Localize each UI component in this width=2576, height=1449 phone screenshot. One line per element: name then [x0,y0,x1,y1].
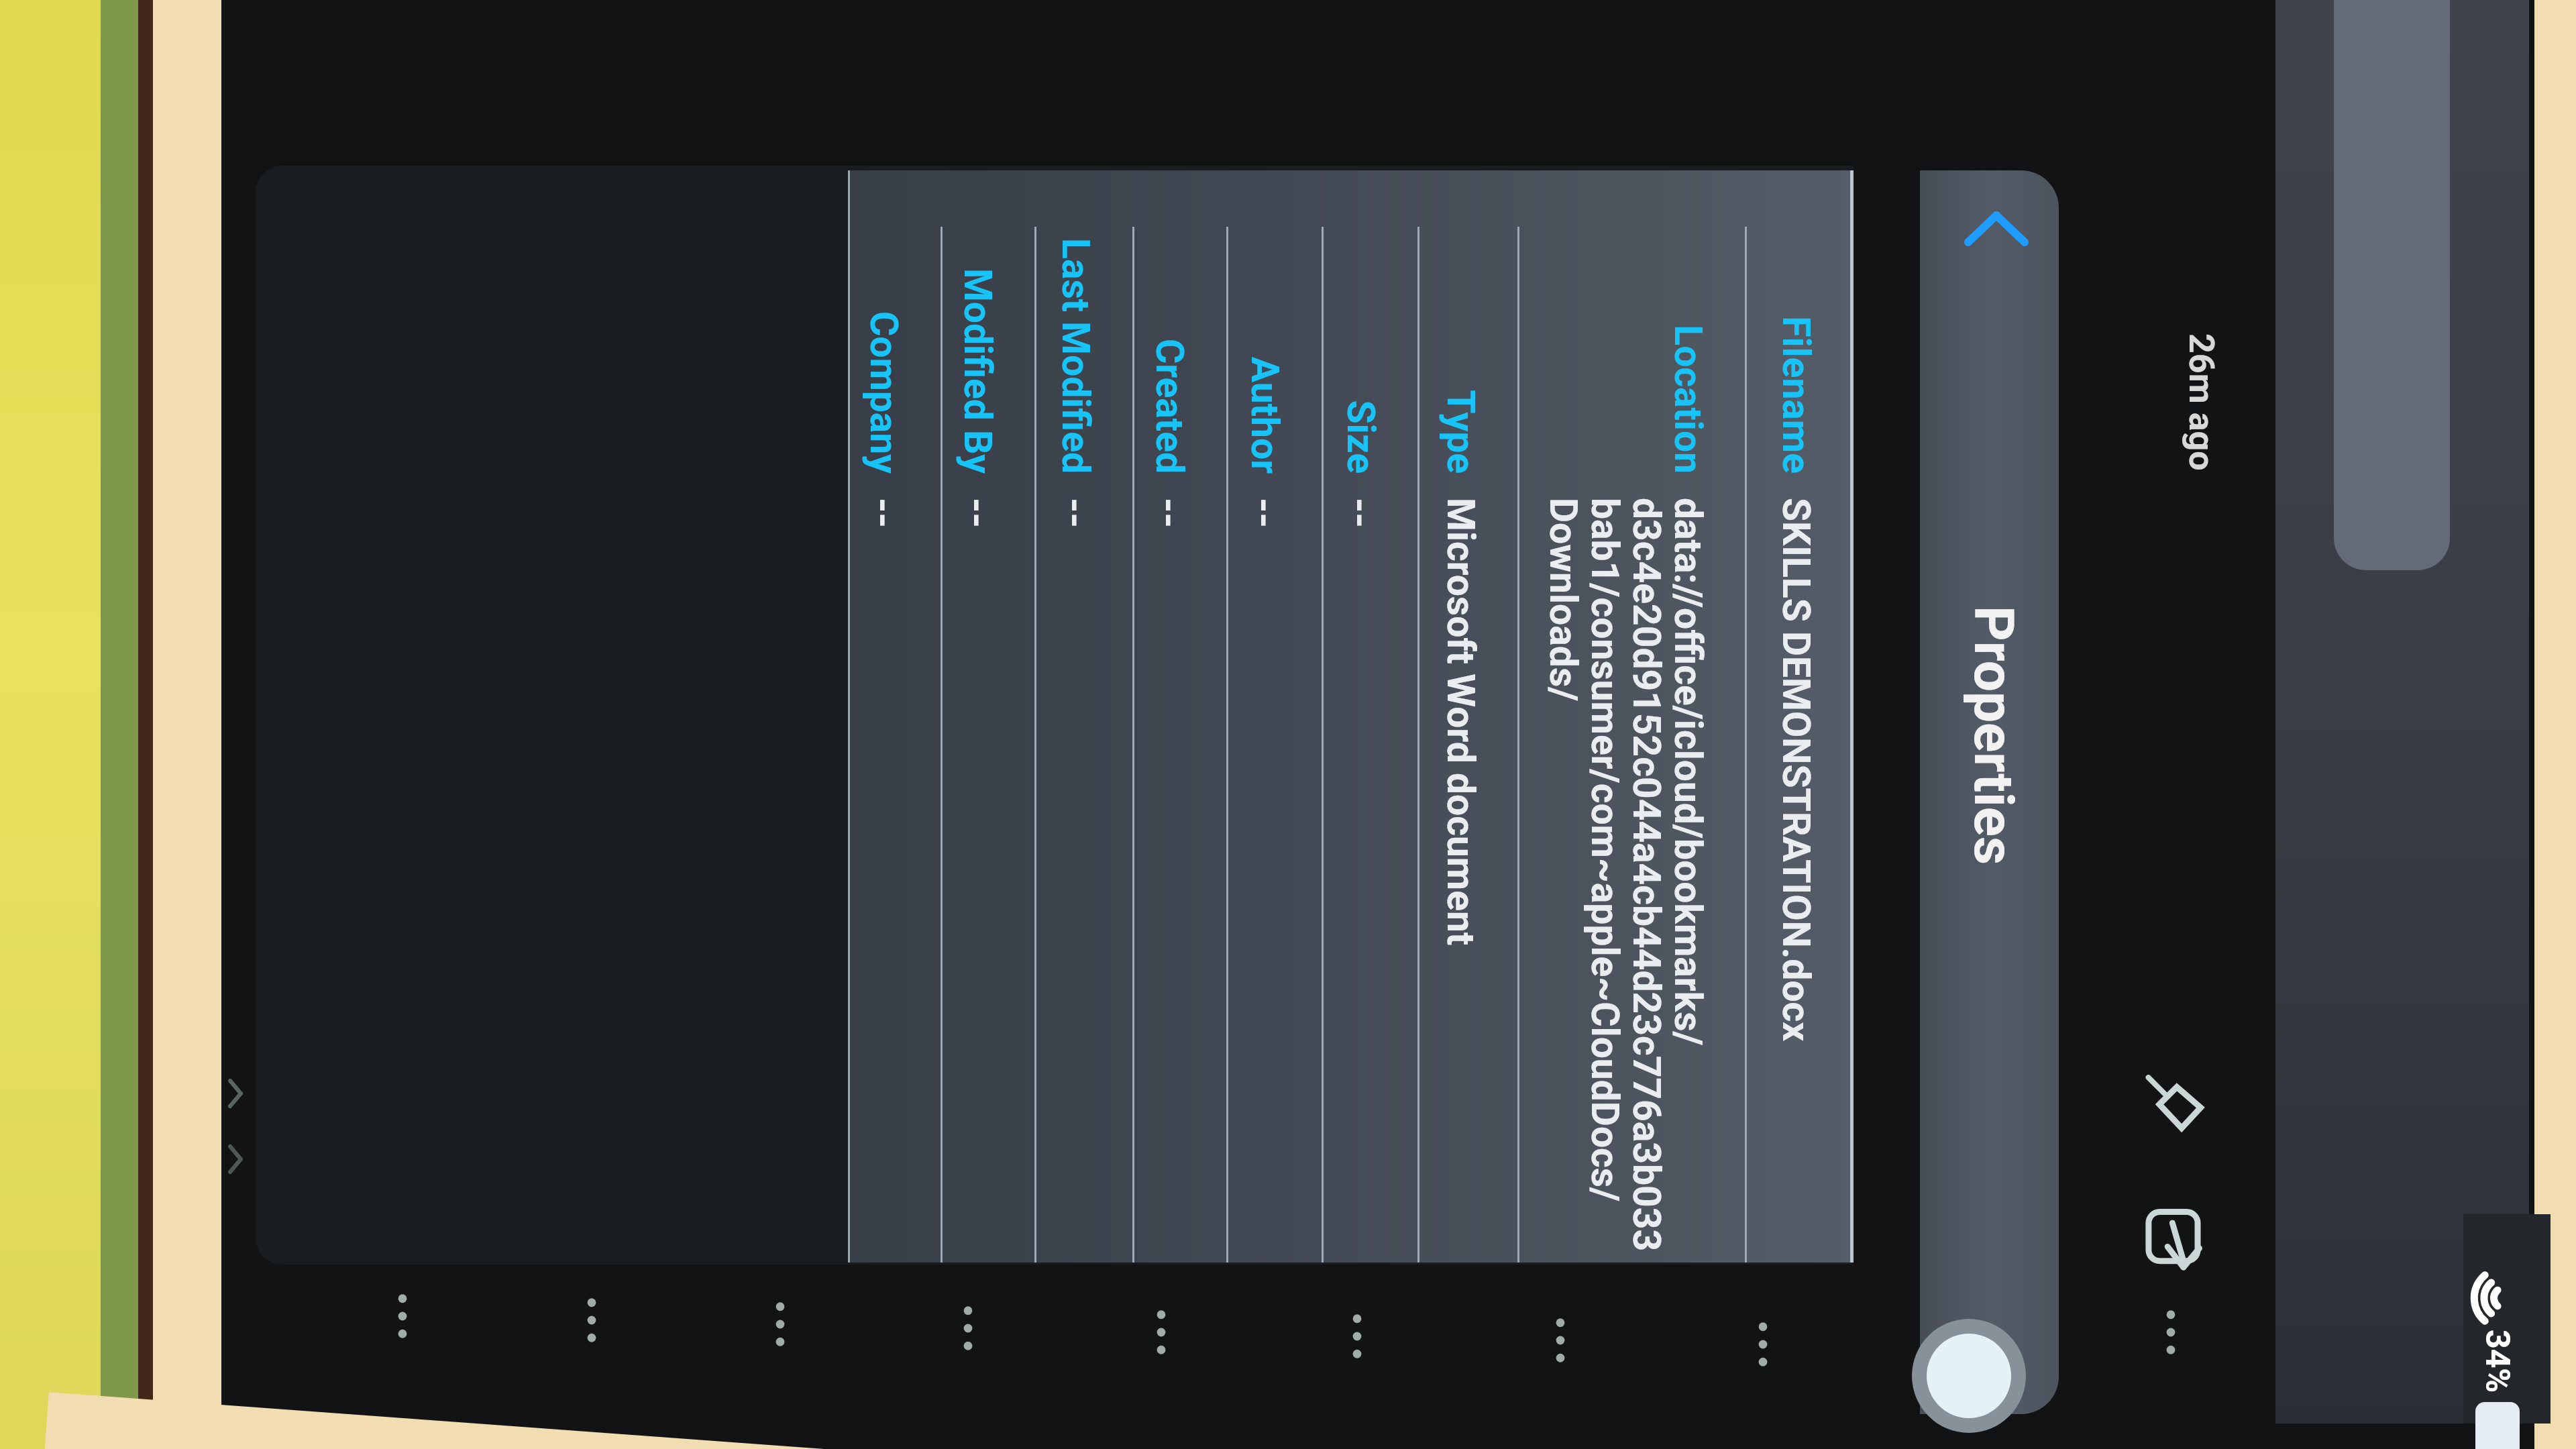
staticText: Author [1242,125,1287,474]
staticText: Size [1338,125,1383,474]
staticText: -- [1147,498,1192,1449]
staticText: Created [1147,125,1192,474]
button[interactable]: Home [1912,1319,2026,1433]
button[interactable]: More options [369,1275,449,1355]
button[interactable] [1034,170,1132,1263]
button[interactable]: Pin [2137,1048,2218,1128]
button[interactable]: Download [2136,1181,2216,1261]
staticText: 26m ago [2181,333,2222,515]
button[interactable]: More options [1527,1299,1607,1379]
button[interactable]: Collapse properties [1945,178,2047,279]
staticText: SKILLS DEMONSTRATION.docx [1774,498,1819,1449]
staticText: -- [955,498,1000,1449]
button[interactable] [1132,170,1226,1263]
button[interactable] [1745,170,1853,1263]
button[interactable]: More options [2137,1291,2218,1371]
button[interactable]: More options [1324,1295,1404,1375]
button[interactable]: More options [1128,1291,1208,1371]
button[interactable] [941,170,1034,1263]
staticText: Microsoft Word document [1438,498,1483,1449]
button[interactable] [848,170,941,1263]
staticText: -- [861,498,906,1449]
staticText: -- [1338,498,1383,1449]
button[interactable] [1417,170,1517,1263]
staticText: Type [1438,125,1483,474]
staticText: -- [1242,498,1287,1449]
staticText: Properties [1962,606,2026,888]
button[interactable]: More options [934,1287,1015,1367]
staticText: data://office/icloud/bookmarks/ d3c4e20d… [1541,498,1711,1449]
button[interactable] [1322,170,1417,1263]
button[interactable] [1920,170,2059,1414]
button[interactable] [1517,170,1745,1263]
button[interactable] [1226,170,1322,1263]
staticText: Company [861,125,906,474]
button[interactable]: More options [747,1283,827,1363]
staticText: 34% [2477,1330,2517,1449]
staticText: Filename [1774,125,1819,474]
staticText: Location [1666,125,1711,474]
staticText: -- [1053,498,1098,1449]
button[interactable]: More options [1729,1303,1810,1383]
staticText: Modified By [955,125,1000,474]
button[interactable]: More options [558,1279,639,1359]
staticText: Last Modified [1053,125,1098,474]
